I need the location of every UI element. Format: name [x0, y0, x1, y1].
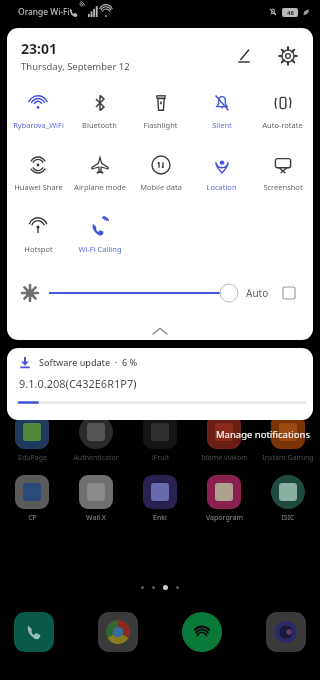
button[interactable]: EduPage: [0, 415, 64, 467]
staticText: Instant Gaming: [262, 453, 314, 463]
button[interactable]: [182, 612, 222, 652]
button[interactable]: Hotspot: [7, 208, 69, 270]
button[interactable]: CP: [0, 475, 64, 527]
button[interactable]: [14, 612, 54, 652]
button[interactable]: Vaporgram: [192, 475, 256, 527]
button[interactable]: Collapse: [7, 322, 313, 340]
staticText: Orange Wi-Fi: [18, 6, 70, 18]
button[interactable]: Authenticator: [64, 415, 128, 467]
button[interactable]: Screenshot: [252, 146, 313, 208]
staticText: 9.1.0.208(C432E6R1P7): [19, 376, 137, 391]
staticText: Vaporgram: [206, 513, 243, 523]
button[interactable]: [266, 612, 306, 652]
button[interactable]: Wall X: [64, 475, 128, 527]
button[interactable]: Huawei Share: [7, 146, 69, 208]
button[interactable]: Auto-rotate: [252, 84, 313, 146]
button[interactable]: [49, 282, 238, 304]
staticText: Silent: [212, 120, 232, 130]
staticText: iFruit: [152, 453, 169, 463]
button[interactable]: Enki: [128, 475, 192, 527]
button[interactable]: Rybarova_WiFi: [7, 84, 69, 146]
staticText: Enki: [153, 513, 167, 523]
staticText: Airplane mode: [74, 182, 126, 192]
staticText: Auto-rotate: [262, 120, 303, 130]
staticText: Auto: [246, 286, 269, 300]
button[interactable]: Bluetooth: [69, 84, 130, 146]
staticText: CP: [28, 513, 37, 523]
button[interactable]: Wi-Fi Calling: [69, 208, 130, 270]
staticText: Wall X: [86, 513, 106, 523]
staticText: Ideme vlakom: [201, 453, 248, 463]
button[interactable]: Airplane mode: [69, 146, 130, 208]
staticText: Flashlight: [143, 120, 178, 130]
staticText: Location: [206, 182, 237, 192]
staticText: Thursday, September 12: [21, 60, 130, 73]
staticText: Rybarova_WiFi: [13, 120, 64, 130]
button[interactable]: Edit: [229, 41, 259, 71]
staticText: 48: [287, 9, 294, 17]
staticText: Huawei Share: [14, 182, 63, 192]
button[interactable]: [98, 612, 138, 652]
button[interactable]: Auto brightness: [279, 283, 299, 303]
button[interactable]: ISIC: [256, 475, 320, 527]
button[interactable]: Ideme vlakom: [192, 415, 256, 467]
button[interactable]: Flashlight: [130, 84, 191, 146]
staticText: 23:01: [21, 39, 57, 58]
staticText: ISIC: [281, 513, 295, 523]
staticText: Software update · 6 %: [39, 356, 138, 368]
staticText: Mobile data: [140, 182, 182, 192]
staticText: EduPage: [18, 453, 47, 463]
button[interactable]: Silent: [191, 84, 252, 146]
staticText: Bluetooth: [82, 120, 117, 130]
staticText: Screenshot: [263, 182, 303, 192]
staticText: Authenticator: [73, 453, 119, 463]
staticText: Wi-Fi Calling: [78, 244, 122, 254]
button[interactable]: Mobile data: [130, 146, 191, 208]
button[interactable]: Location: [191, 146, 252, 208]
staticText: Hotspot: [24, 244, 53, 254]
staticText: Manage notifications: [216, 428, 310, 441]
button[interactable]: iFruit: [128, 415, 192, 467]
button[interactable]: Instant Gaming: [256, 415, 320, 467]
button[interactable]: Manage notifications: [216, 428, 310, 441]
button[interactable]: Settings: [273, 41, 303, 71]
button[interactable]: Software update · 6 %: [7, 348, 313, 420]
